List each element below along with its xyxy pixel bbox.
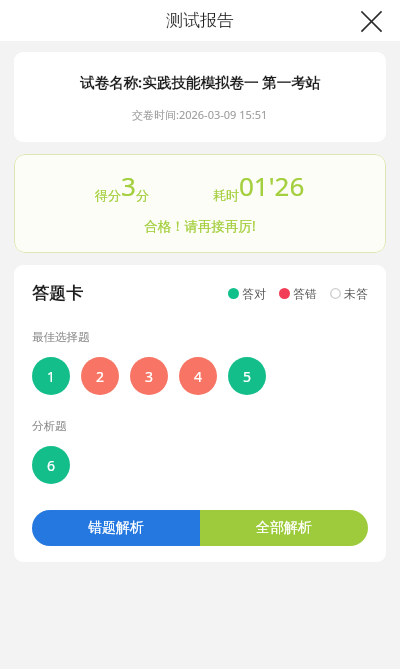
button[interactable]: 5 xyxy=(228,357,266,395)
staticText: 3 xyxy=(121,168,136,203)
staticText: 3 xyxy=(145,367,154,386)
staticText: 答对 xyxy=(242,286,266,301)
staticText: 耗时 xyxy=(213,187,239,203)
button[interactable]: 答对 xyxy=(228,286,266,301)
staticText: 6 xyxy=(47,456,56,475)
staticText: 分 xyxy=(136,187,149,203)
staticText: 全部解析 xyxy=(256,519,312,537)
staticText: 试卷名称:实践技能模拟卷一 第一考站 xyxy=(80,72,320,92)
staticText: 答题卡 xyxy=(32,283,83,304)
staticText: 错题解析 xyxy=(88,519,144,537)
staticText: 分析题 xyxy=(32,419,67,433)
button[interactable]: 答错 xyxy=(279,286,317,301)
staticText: 未答 xyxy=(344,286,368,301)
button[interactable]: 错题解析 xyxy=(32,510,200,546)
button[interactable]: 1 xyxy=(32,357,70,395)
button[interactable]: Close xyxy=(354,4,388,38)
staticText: 1 xyxy=(47,367,56,386)
button[interactable]: 3 xyxy=(130,357,168,395)
button[interactable]: 6 xyxy=(32,446,70,484)
staticText: 4 xyxy=(194,367,203,386)
button[interactable]: 未答 xyxy=(330,286,368,301)
staticText: 得分 xyxy=(95,187,121,203)
staticText: 合格！请再接再厉! xyxy=(144,217,256,235)
staticText: 5 xyxy=(243,367,252,386)
staticText: 答错 xyxy=(293,286,317,301)
staticText: 2 xyxy=(96,367,105,386)
staticText: 01'26 xyxy=(239,168,305,203)
staticText: 最佳选择题 xyxy=(32,330,90,344)
staticText: 测试报告 xyxy=(166,10,234,31)
button[interactable]: 4 xyxy=(179,357,217,395)
button[interactable]: 全部解析 xyxy=(200,510,368,546)
staticText: 交卷时间:2026-03-09 15:51 xyxy=(132,107,268,122)
button[interactable]: 2 xyxy=(81,357,119,395)
